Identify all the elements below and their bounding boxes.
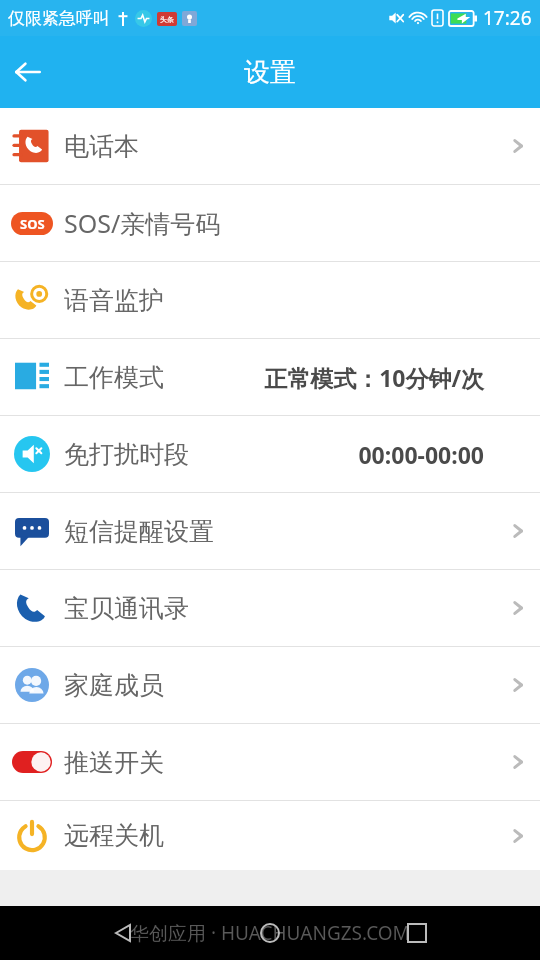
button[interactable]: 宝贝通讯录 [0,570,540,646]
staticText: 电话本 [64,131,139,162]
button[interactable]: Recents [393,909,441,957]
staticText: SOS/亲情号码 [64,206,221,240]
button[interactable]: 远程关机 [0,801,540,870]
button[interactable]: 家庭成员 [0,647,540,723]
staticText: 00:00-00:00 [358,439,484,470]
staticText: 推送开关 [64,747,164,778]
staticText: 正常模式：10分钟/次 [264,362,484,393]
staticText: 仅限紧急呼叫 [8,8,110,29]
staticText: 头条 [160,15,174,24]
staticText: 免打扰时段 [64,439,189,470]
button[interactable]: 电话本 [0,108,540,184]
button[interactable]: SOS [0,185,540,261]
button[interactable]: 短信提醒设置 [0,493,540,569]
staticText: 宝贝通讯录 [64,593,189,624]
staticText: 设置 [244,56,296,89]
button[interactable]: 语音监护 [0,262,540,338]
staticText: 工作模式 [64,362,164,393]
button[interactable]: Back [99,909,147,957]
staticText: 远程关机 [64,820,164,851]
button[interactable]: 工作模式 [0,339,540,415]
staticText: 华创应用 · HUACHUANGZS.COM [130,920,410,946]
button[interactable]: Back [0,44,56,100]
button[interactable]: 免打扰时段 [0,416,540,492]
button[interactable]: Home [246,909,294,957]
staticText: 家庭成员 [64,670,164,701]
staticText: SOS [20,215,45,233]
staticText: 短信提醒设置 [64,516,214,547]
staticText: 17:26 [483,5,532,31]
staticText: 语音监护 [64,285,164,316]
button[interactable]: 推送开关 [0,724,540,800]
